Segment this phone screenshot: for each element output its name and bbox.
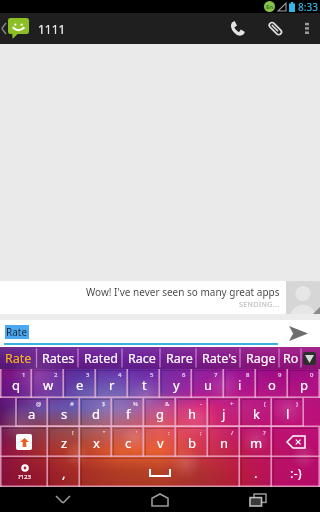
button[interactable]: o bbox=[256, 369, 288, 398]
staticText: ! bbox=[72, 429, 74, 437]
staticText: :-) bbox=[290, 464, 302, 482]
staticText: + bbox=[230, 400, 234, 408]
button[interactable]: Rage bbox=[241, 347, 280, 369]
button[interactable]: i bbox=[224, 369, 256, 398]
staticText: f bbox=[126, 405, 131, 423]
button[interactable]: Delete bbox=[272, 427, 320, 457]
button[interactable]: , bbox=[48, 457, 80, 487]
staticText: 1 bbox=[22, 371, 26, 379]
staticText: i bbox=[238, 376, 242, 394]
button[interactable]: Shift bbox=[0, 427, 48, 457]
button[interactable]: Rates bbox=[37, 347, 79, 369]
button[interactable]: k bbox=[240, 398, 272, 427]
staticText: ; bbox=[200, 429, 202, 437]
staticText: . bbox=[254, 464, 258, 482]
button[interactable]: f bbox=[112, 398, 144, 427]
staticText: ? bbox=[263, 429, 266, 437]
button[interactable]: Rare bbox=[161, 347, 197, 369]
button[interactable]: d bbox=[80, 398, 112, 427]
staticText: x bbox=[93, 434, 100, 452]
staticText: SENDING... bbox=[239, 300, 280, 310]
button[interactable]: Expand suggestions bbox=[303, 352, 316, 365]
other: Symbols bbox=[18, 463, 31, 481]
staticText: l bbox=[286, 405, 290, 423]
button[interactable]: . bbox=[240, 457, 272, 487]
staticText: u bbox=[204, 376, 213, 394]
button[interactable]: Call bbox=[218, 13, 256, 44]
staticText: Rated bbox=[84, 350, 119, 367]
button[interactable]: Space bbox=[80, 457, 240, 487]
button[interactable]: x bbox=[80, 427, 112, 457]
staticText: Race bbox=[128, 350, 156, 367]
staticText: Wow! I've never seen so many great apps bbox=[86, 285, 280, 299]
staticText: , bbox=[62, 464, 66, 482]
staticText: k bbox=[253, 405, 260, 423]
button[interactable]: b bbox=[176, 427, 208, 457]
button[interactable]: More options bbox=[294, 13, 320, 44]
staticText: s bbox=[61, 405, 68, 423]
staticText: Ro bbox=[283, 350, 299, 367]
staticText: Rate bbox=[6, 325, 28, 339]
staticText: 4 bbox=[118, 371, 122, 379]
staticText: Rate's bbox=[202, 350, 237, 367]
staticText: # bbox=[70, 400, 74, 408]
staticText: o bbox=[268, 376, 276, 394]
staticText: z bbox=[61, 434, 68, 452]
button[interactable]: a bbox=[16, 398, 48, 427]
staticText: b bbox=[188, 434, 196, 452]
staticText: y bbox=[173, 376, 180, 394]
button[interactable]: w bbox=[32, 369, 64, 398]
button[interactable]: Rate bbox=[0, 347, 37, 369]
staticText: Rare bbox=[166, 350, 193, 367]
button[interactable] bbox=[0, 13, 33, 44]
staticText: $ bbox=[102, 400, 106, 408]
button[interactable]: n bbox=[208, 427, 240, 457]
button[interactable]: Back bbox=[28, 487, 98, 512]
staticText: a bbox=[28, 405, 36, 423]
button[interactable]: u bbox=[192, 369, 224, 398]
staticText: r bbox=[109, 376, 115, 394]
button[interactable]: z bbox=[48, 427, 80, 457]
button[interactable]: t bbox=[128, 369, 160, 398]
button[interactable]: Home bbox=[125, 487, 195, 512]
button[interactable]: e bbox=[64, 369, 96, 398]
other: Shift bbox=[16, 434, 32, 450]
staticText: g bbox=[156, 405, 164, 423]
staticText: w bbox=[43, 376, 54, 394]
staticText: n bbox=[220, 434, 229, 452]
button[interactable]: m bbox=[240, 427, 272, 457]
staticText: 0 bbox=[310, 371, 314, 379]
button[interactable]: Symbols bbox=[0, 457, 48, 487]
staticText: 8 bbox=[246, 371, 250, 379]
button[interactable]: c bbox=[112, 427, 144, 457]
button[interactable]: Ro bbox=[280, 347, 302, 369]
button[interactable]: Race bbox=[123, 347, 161, 369]
button[interactable]: p bbox=[288, 369, 320, 398]
button[interactable]: g bbox=[144, 398, 176, 427]
button[interactable]: Rate's bbox=[197, 347, 241, 369]
staticText: ( bbox=[264, 400, 266, 408]
button[interactable]: s bbox=[48, 398, 80, 427]
staticText: & bbox=[165, 400, 170, 408]
button[interactable]: Attach bbox=[256, 13, 294, 44]
button[interactable]: Send bbox=[276, 320, 320, 347]
staticText: p bbox=[300, 376, 308, 394]
button[interactable]: q bbox=[0, 369, 32, 398]
staticText: t bbox=[142, 376, 147, 394]
staticText: m bbox=[250, 434, 263, 452]
staticText: - bbox=[200, 400, 202, 408]
staticText: ' bbox=[136, 429, 138, 437]
staticText: 5 bbox=[150, 371, 154, 379]
button[interactable]: j bbox=[208, 398, 240, 427]
button[interactable]: :-) bbox=[272, 457, 320, 487]
button[interactable]: h bbox=[176, 398, 208, 427]
button[interactable]: y bbox=[160, 369, 192, 398]
button[interactable]: Recent apps bbox=[223, 487, 293, 512]
button[interactable]: r bbox=[96, 369, 128, 398]
button[interactable]: v bbox=[144, 427, 176, 457]
button[interactable]: l bbox=[272, 398, 304, 427]
staticText: En bbox=[266, 3, 274, 11]
staticText: q bbox=[12, 376, 20, 394]
button[interactable]: Rated bbox=[79, 347, 123, 369]
staticText: d bbox=[92, 405, 100, 423]
